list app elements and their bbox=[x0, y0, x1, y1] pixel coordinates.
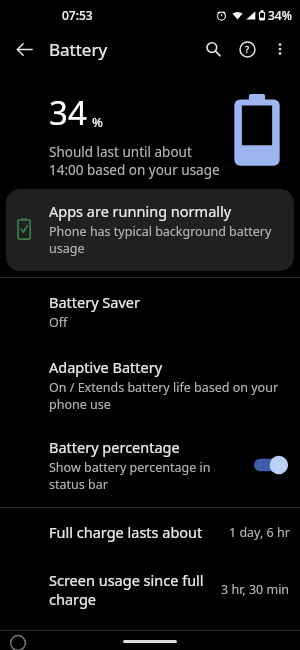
button[interactable]: More options bbox=[264, 33, 296, 65]
staticText: 1 day, 6 hr bbox=[229, 524, 290, 541]
staticText: Screen usage since full charge bbox=[49, 570, 213, 609]
staticText: 3 hr, 30 min bbox=[221, 581, 290, 598]
staticText: Battery Saver bbox=[49, 292, 140, 312]
button[interactable]: Full charge lasts about bbox=[0, 508, 300, 556]
staticText: Battery bbox=[49, 38, 108, 61]
button[interactable]: Battery Saver bbox=[0, 278, 300, 345]
staticText: Adaptive Battery bbox=[49, 357, 163, 377]
button[interactable]: Adaptive Battery bbox=[0, 345, 300, 425]
staticText: Battery percentage bbox=[49, 437, 180, 457]
staticText: On / Extends battery life based on your … bbox=[49, 379, 284, 413]
button[interactable]: Search bbox=[196, 32, 230, 66]
button[interactable]: Battery percentage toggle bbox=[254, 455, 288, 475]
button[interactable]: Battery percentage bbox=[0, 425, 300, 507]
staticText: Show battery percentage in status bar bbox=[49, 459, 246, 493]
staticText: 07:53 bbox=[62, 7, 93, 23]
button[interactable]: Help bbox=[230, 32, 264, 66]
staticText: Should last until about 14:00 based on y… bbox=[49, 143, 224, 179]
staticText: 34 bbox=[49, 90, 87, 135]
staticText: Full charge lasts about bbox=[49, 522, 203, 542]
button[interactable]: Apps are running normally bbox=[6, 189, 294, 271]
staticText: Apps are running normally bbox=[49, 201, 232, 221]
staticText: % bbox=[92, 113, 103, 131]
staticText: Off bbox=[49, 314, 68, 331]
button[interactable]: Back bbox=[6, 31, 42, 67]
staticText: ? bbox=[245, 43, 250, 55]
button[interactable]: Screen usage since full charge bbox=[0, 556, 300, 623]
staticText: 34% bbox=[268, 7, 292, 23]
staticText: Phone has typical background battery usa… bbox=[49, 223, 280, 257]
